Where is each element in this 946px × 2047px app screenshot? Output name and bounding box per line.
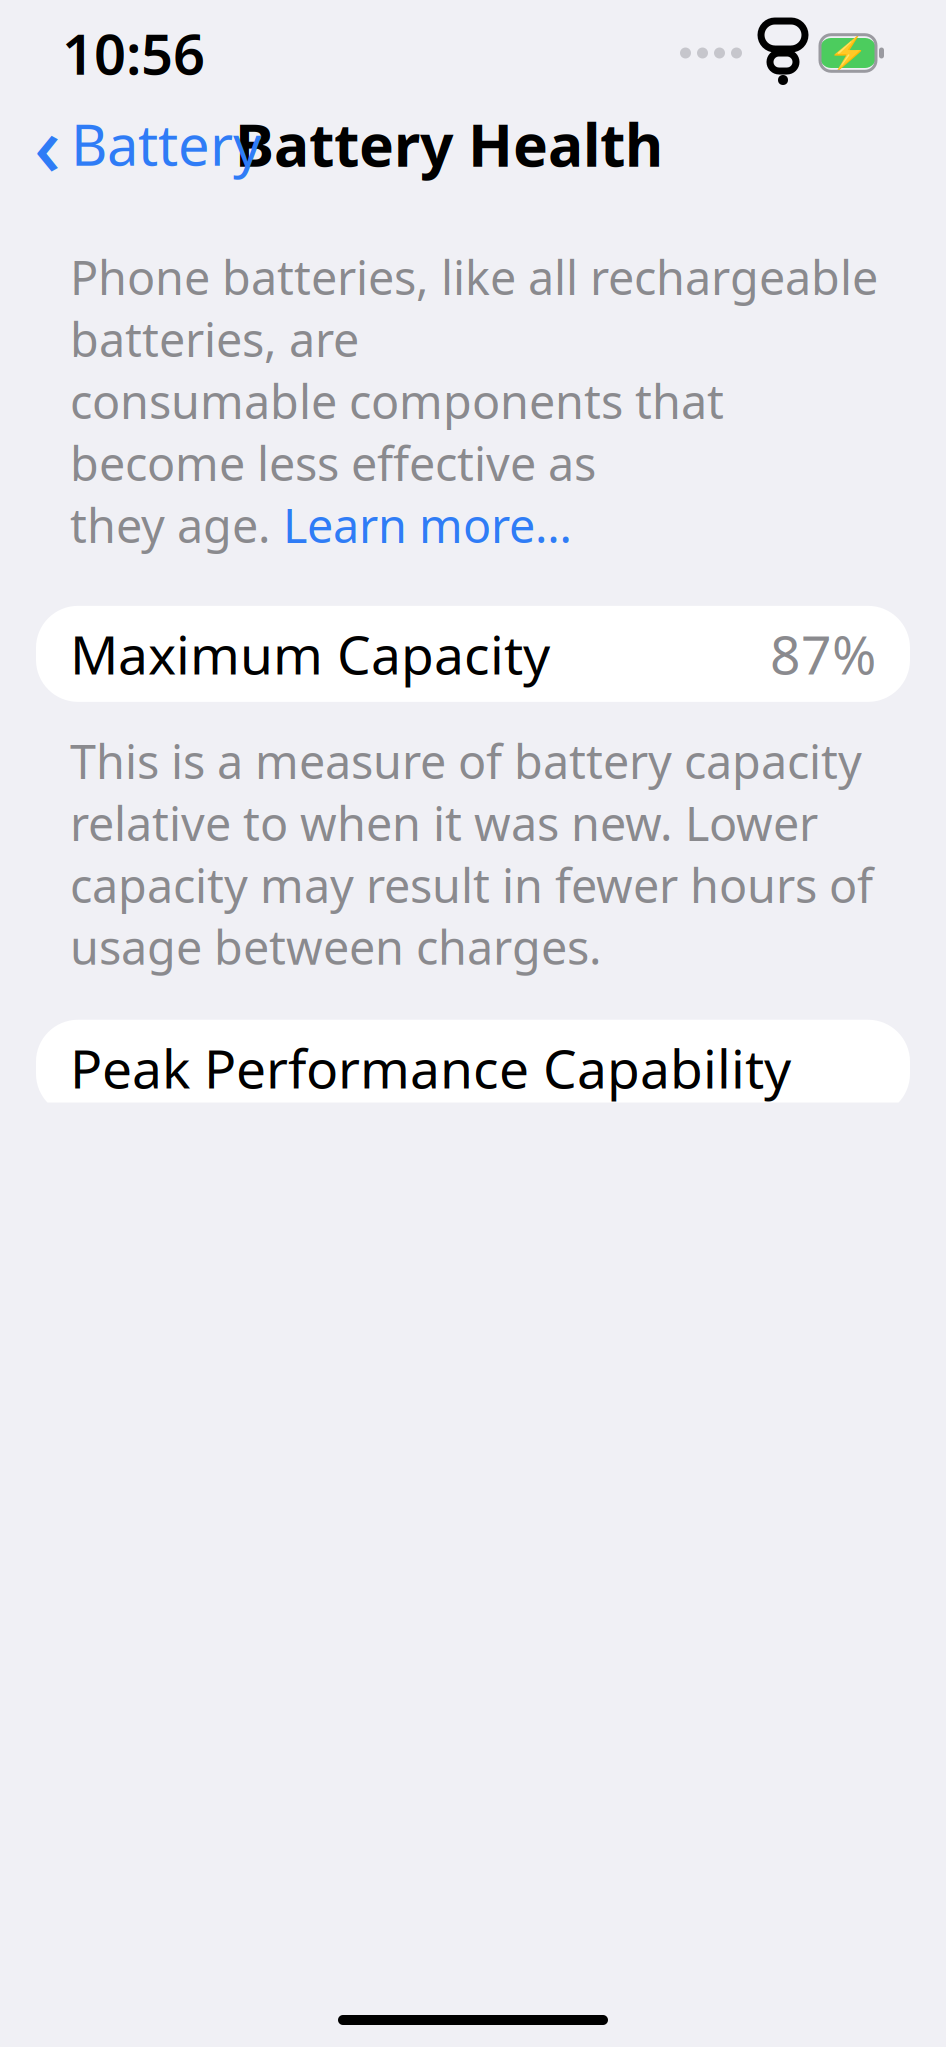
staticText: ‹ (34, 89, 61, 199)
staticText: Learn more… (283, 494, 572, 556)
staticText: ⚡ (828, 35, 868, 71)
staticText: 87% (770, 618, 876, 689)
button[interactable]: ‹ (14, 81, 282, 207)
staticText: This is a measure of battery capacity re… (70, 730, 873, 978)
staticText: Phone batteries, like all rechargeable b… (70, 246, 878, 370)
staticText: Maximum Capacity (70, 618, 550, 689)
staticText: Battery (71, 107, 262, 181)
button[interactable]: Learn more… (283, 494, 572, 556)
staticText: consumable components that become less e… (70, 370, 724, 494)
staticText: Battery Health (235, 105, 663, 183)
staticText: they age. (70, 494, 283, 556)
staticText: 10:56 (62, 16, 205, 90)
staticText: Peak Performance Capability (70, 1032, 791, 1103)
